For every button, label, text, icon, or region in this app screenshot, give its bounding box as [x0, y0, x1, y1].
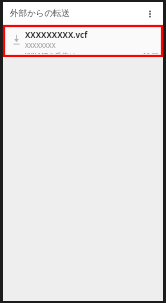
button[interactable]: More options [139, 3, 161, 25]
staticText: 外部からの転送 [10, 8, 71, 19]
staticText: 10:35 [143, 51, 159, 54]
button[interactable]: XXXXXXXXX.vcf [3, 25, 163, 57]
staticText: XXXXXXXX [25, 41, 56, 50]
staticText: XXX MBの受信が完了しました。 [25, 51, 84, 54]
staticText: XXXXXXXXX.vcf [25, 29, 88, 40]
